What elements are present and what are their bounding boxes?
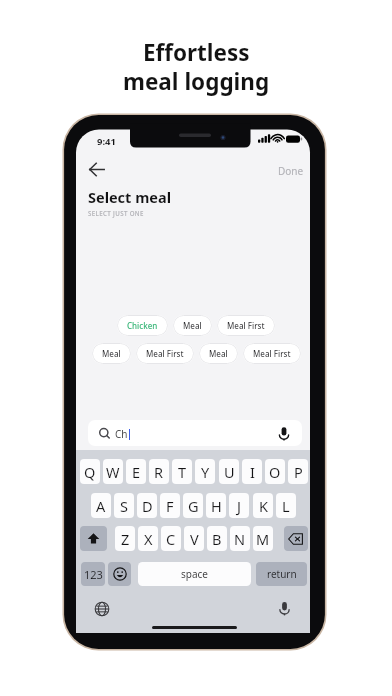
staticText: Z xyxy=(121,529,130,549)
button[interactable]: X xyxy=(138,526,158,551)
button[interactable]: B xyxy=(207,526,227,551)
staticText: S xyxy=(120,496,128,516)
button[interactable]: return xyxy=(256,562,307,586)
staticText: Meal xyxy=(102,348,121,359)
button[interactable]: Meal xyxy=(173,315,212,336)
button[interactable]: F xyxy=(160,493,180,518)
staticText: Meal xyxy=(183,320,202,331)
staticText: N xyxy=(234,529,246,549)
button[interactable]: M xyxy=(253,526,273,551)
staticText: SELECT JUST ONE xyxy=(88,209,144,217)
button[interactable]: Meal First xyxy=(136,343,194,364)
button[interactable]: Switch keyboard xyxy=(94,601,110,617)
staticText: E xyxy=(132,462,141,482)
button[interactable]: L xyxy=(276,493,296,518)
staticText: 123 xyxy=(84,567,103,582)
button[interactable]: Z xyxy=(115,526,135,551)
button[interactable]: K xyxy=(253,493,273,518)
button[interactable]: W xyxy=(103,459,123,484)
button[interactable]: H xyxy=(206,493,226,518)
staticText: Meal First xyxy=(253,348,291,359)
button[interactable]: Meal xyxy=(199,343,238,364)
button[interactable]: J xyxy=(229,493,249,518)
staticText: C xyxy=(166,529,176,549)
button[interactable]: R xyxy=(149,459,169,484)
button[interactable]: O xyxy=(265,459,285,484)
button[interactable]: Done xyxy=(276,162,306,180)
button[interactable]: Emoji xyxy=(108,562,131,586)
staticText: return xyxy=(267,567,297,581)
staticText: Ch xyxy=(115,427,128,441)
button[interactable]: Back xyxy=(84,157,110,181)
staticText: Y xyxy=(201,462,210,482)
staticText: T xyxy=(178,462,187,482)
staticText: X xyxy=(144,529,153,549)
button[interactable]: space xyxy=(138,562,251,586)
staticText: J xyxy=(237,496,241,516)
button[interactable]: G xyxy=(183,493,203,518)
staticText: R xyxy=(154,462,164,482)
button[interactable]: Meal First xyxy=(217,315,275,336)
button[interactable]: N xyxy=(230,526,250,551)
button[interactable]: 123 xyxy=(81,562,105,586)
button[interactable]: Chicken xyxy=(117,315,168,336)
staticText: meal logging xyxy=(123,66,270,97)
staticText: L xyxy=(282,496,290,516)
button[interactable]: A xyxy=(91,493,111,518)
staticText: B xyxy=(212,529,222,549)
staticText: U xyxy=(224,462,235,482)
staticText: Meal First xyxy=(146,348,184,359)
staticText: O xyxy=(269,462,281,482)
button[interactable]: S xyxy=(114,493,134,518)
button[interactable]: V xyxy=(184,526,204,551)
staticText: Effortless xyxy=(143,37,250,68)
staticText: P xyxy=(294,462,303,482)
button[interactable]: Meal xyxy=(92,343,131,364)
staticText: V xyxy=(190,529,199,549)
button[interactable]: Ch xyxy=(88,420,302,446)
button[interactable]: Meal First xyxy=(243,343,301,364)
button[interactable]: Q xyxy=(80,459,100,484)
staticText: K xyxy=(259,496,268,516)
button[interactable]: T xyxy=(172,459,192,484)
button[interactable]: Dictation xyxy=(277,601,292,617)
staticText: D xyxy=(142,496,153,516)
button[interactable]: Y xyxy=(195,459,215,484)
staticText: Done xyxy=(278,164,304,178)
staticText: M xyxy=(256,529,270,549)
button[interactable]: P xyxy=(288,459,308,484)
button[interactable]: Voice search xyxy=(277,426,291,441)
staticText: W xyxy=(106,462,120,482)
button[interactable]: D xyxy=(137,493,157,518)
staticText: Meal First xyxy=(227,320,265,331)
staticText: Chicken xyxy=(127,320,158,331)
staticText: A xyxy=(96,496,106,516)
button[interactable]: C xyxy=(161,526,181,551)
staticText: space xyxy=(181,567,208,581)
staticText: I xyxy=(250,462,255,482)
button[interactable] xyxy=(80,526,107,551)
staticText: 9:41 xyxy=(97,135,116,148)
staticText: Meal xyxy=(209,348,228,359)
staticText: H xyxy=(211,496,222,516)
staticText: F xyxy=(166,496,174,516)
button[interactable]: U xyxy=(219,459,239,484)
button[interactable]: Backspace xyxy=(284,526,308,551)
staticText: Select meal xyxy=(88,187,171,207)
staticText: G xyxy=(188,496,199,516)
staticText: Q xyxy=(84,462,96,482)
button[interactable]: I xyxy=(242,459,262,484)
button[interactable]: E xyxy=(126,459,146,484)
